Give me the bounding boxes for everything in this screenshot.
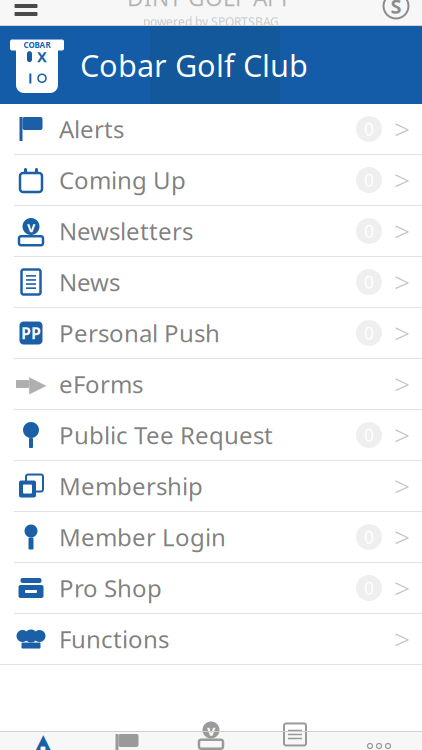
staticText: 0 (364, 321, 374, 344)
staticText: 0 (364, 423, 374, 446)
staticText: > (394, 263, 410, 301)
staticText: v (27, 217, 35, 236)
button[interactable]: ▲ (1, 731, 85, 750)
staticText: Coming Up (59, 164, 186, 196)
staticText: > (394, 569, 410, 607)
button[interactable]: Menu (4, 0, 48, 26)
staticText: 0 (364, 270, 374, 293)
staticText: X (37, 47, 47, 66)
staticText: Public Tee Request (59, 419, 273, 451)
staticText: eForms (59, 368, 143, 400)
staticText: > (394, 365, 410, 403)
staticText: 0 (364, 117, 374, 140)
button[interactable]: Functions (0, 614, 422, 664)
staticText: > (394, 161, 410, 199)
button[interactable]: Membership (0, 461, 422, 511)
staticText: Member Login (59, 521, 226, 553)
staticText: ▶ (29, 371, 46, 397)
staticText: ▲ (35, 730, 50, 750)
staticText: Membership (59, 470, 203, 502)
button[interactable]: Public Tee Request (0, 410, 422, 460)
staticText: J (28, 69, 32, 87)
staticText: Newsletters (59, 215, 193, 247)
button[interactable]: Alerts (0, 104, 422, 154)
staticText: COBAR (23, 40, 50, 50)
staticText: > (394, 314, 410, 352)
button[interactable]: PP (0, 308, 422, 358)
staticText: DINT GOLF APP (127, 0, 295, 13)
button[interactable]: News (0, 257, 422, 307)
staticText: Cobar Golf Club (80, 45, 308, 85)
staticText: Functions (59, 623, 169, 655)
button[interactable]: Member Login (0, 512, 422, 562)
button[interactable]: v (0, 206, 422, 256)
button[interactable]: v (169, 731, 253, 750)
button[interactable]: ▶ (0, 359, 422, 409)
staticText: Personal Push (59, 317, 220, 349)
button[interactable]: Refresh (374, 0, 418, 26)
staticText: 0 (364, 525, 374, 548)
staticText: > (394, 110, 410, 148)
button[interactable]: Pro Shop (0, 563, 422, 613)
staticText: > (394, 416, 410, 454)
staticText: 0 (364, 168, 374, 191)
staticText: > (394, 620, 410, 658)
staticText: News (59, 266, 120, 298)
button[interactable]: Coming Up (0, 155, 422, 205)
button[interactable]: Alerts (85, 731, 169, 750)
staticText: 0 (364, 576, 374, 599)
button[interactable]: Coming Up (253, 731, 337, 750)
staticText: PP (21, 322, 41, 344)
staticText: > (394, 518, 410, 556)
button[interactable]: More (337, 731, 421, 750)
staticText: S (390, 0, 401, 19)
staticText: v (207, 720, 215, 740)
staticText: Alerts (59, 113, 124, 145)
staticText: 0 (364, 219, 374, 242)
staticText: Pro Shop (59, 572, 162, 604)
staticText: > (394, 212, 410, 250)
staticText: > (394, 467, 410, 505)
staticText: powered by SPORTSBAG (143, 14, 279, 29)
